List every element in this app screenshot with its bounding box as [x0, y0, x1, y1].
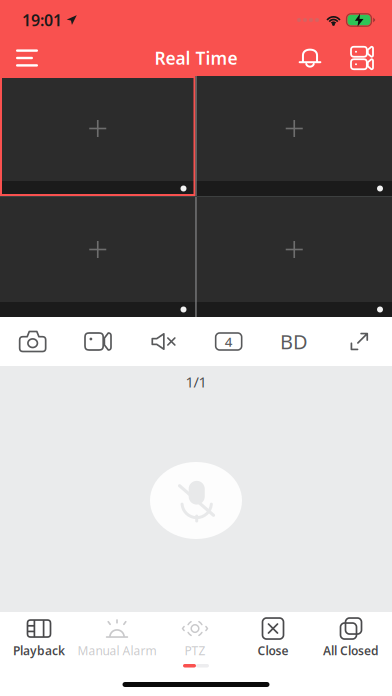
staticText: Manual Alarm: [77, 642, 156, 658]
staticText: PTZ: [184, 642, 205, 658]
button[interactable]: Device list: [332, 39, 392, 77]
staticText: Playback: [13, 642, 65, 658]
staticText: All Closed: [323, 642, 379, 658]
staticText: 1/1: [185, 372, 206, 391]
button[interactable]: All Closed: [312, 612, 390, 658]
button[interactable]: Menu: [0, 39, 54, 77]
button[interactable]: Snapshot: [0, 317, 65, 366]
button[interactable]: Camera window: [196, 76, 392, 196]
staticText: Close: [257, 642, 288, 658]
button[interactable]: Close: [234, 612, 312, 658]
button[interactable]: Manual Alarm: [78, 612, 156, 658]
button[interactable]: Camera window: [196, 197, 392, 317]
staticText: 4: [225, 333, 233, 350]
staticText: 19:01: [22, 9, 62, 31]
button[interactable]: Camera window: [0, 76, 195, 196]
button[interactable]: Alarm notifications: [288, 39, 332, 77]
button[interactable]: Camera window: [0, 197, 195, 317]
staticText: BD: [280, 328, 308, 355]
button[interactable]: Playback: [0, 612, 78, 658]
button[interactable]: Stream quality: [261, 317, 327, 366]
button[interactable]: Window layout: [196, 317, 261, 366]
button[interactable]: Full screen: [327, 317, 392, 366]
staticText: Real Time: [154, 46, 237, 69]
button[interactable]: Talk: [150, 462, 242, 539]
button[interactable]: Record: [65, 317, 131, 366]
button[interactable]: PTZ: [156, 612, 234, 658]
button[interactable]: Mute audio: [131, 317, 196, 366]
